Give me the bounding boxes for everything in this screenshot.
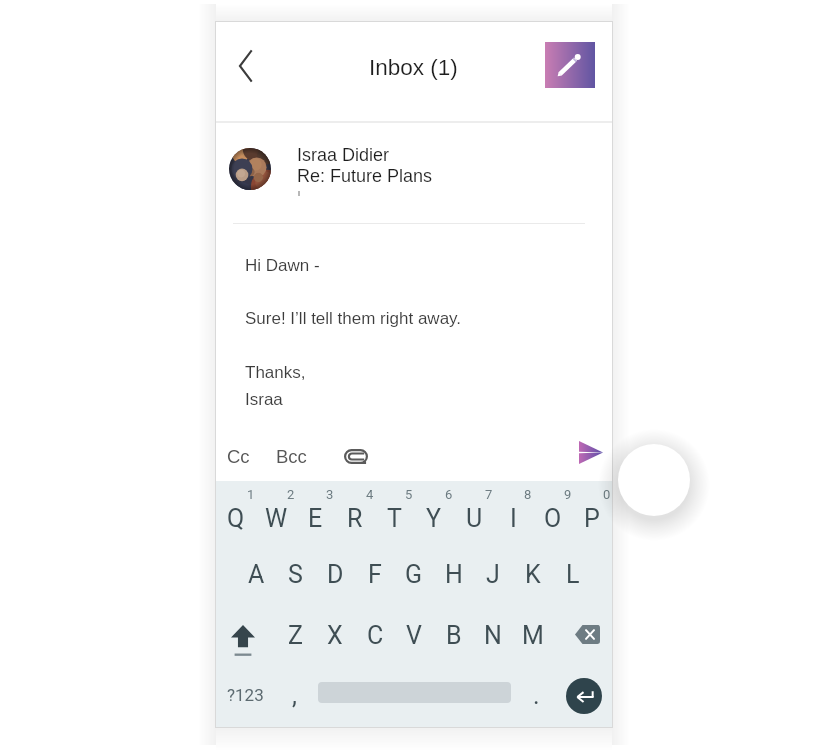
staticText: C [367, 621, 384, 650]
button[interactable]: C [355, 616, 395, 655]
staticText: T [387, 504, 402, 533]
staticText: Sure! I’ll tell them right away. [245, 309, 462, 328]
staticText: 0 [603, 487, 611, 502]
staticText: L [566, 560, 580, 589]
button[interactable]: U [454, 499, 494, 538]
button[interactable]: S [275, 555, 315, 594]
button[interactable]: Attach file [334, 432, 378, 480]
button[interactable]: F [355, 555, 395, 594]
button[interactable]: Y [414, 499, 454, 538]
staticText: Inbox (1) [369, 55, 458, 80]
button[interactable]: E [295, 499, 335, 538]
staticText: X [327, 621, 343, 650]
staticText: N [484, 621, 502, 650]
staticText: K [525, 560, 541, 589]
button[interactable]: G [394, 555, 434, 594]
staticText: W [265, 504, 288, 533]
staticText: Hi Dawn - [245, 256, 320, 275]
staticText: R [347, 504, 363, 533]
button[interactable]: W [256, 499, 296, 538]
button[interactable]: I [493, 499, 533, 538]
staticText: 3 [326, 487, 334, 502]
staticText: O [544, 504, 562, 533]
staticText: Re: Future Plans [297, 166, 433, 186]
button[interactable]: , [274, 680, 318, 722]
staticText: Q [227, 504, 245, 533]
staticText: A [248, 560, 265, 589]
staticText: G [405, 560, 423, 589]
button[interactable]: X [315, 616, 355, 655]
staticText: J [486, 560, 500, 589]
button[interactable]: O [533, 499, 573, 538]
button[interactable]: V [394, 616, 434, 655]
button[interactable]: T [374, 499, 414, 538]
staticText: U [466, 504, 483, 533]
staticText: 7 [485, 487, 493, 502]
staticText: 8 [524, 487, 532, 502]
button[interactable]: Enter [566, 678, 602, 714]
button[interactable]: L [553, 555, 593, 594]
button[interactable]: H [434, 555, 474, 594]
button[interactable]: P [572, 499, 612, 538]
staticText: 9 [564, 487, 572, 502]
button[interactable]: R [335, 499, 375, 538]
staticText: I [510, 504, 517, 533]
staticText: M [522, 621, 544, 650]
staticText: F [368, 560, 382, 589]
staticText: Bcc [276, 446, 307, 467]
staticText: D [327, 560, 344, 589]
staticText: Cc [227, 446, 250, 467]
button[interactable]: M [513, 616, 553, 655]
button[interactable]: Bcc [266, 432, 316, 480]
button[interactable]: Back [222, 42, 270, 90]
staticText: 2 [287, 487, 295, 502]
button[interactable]: Z [275, 616, 315, 655]
staticText: S [288, 560, 303, 589]
button[interactable]: Shift [230, 622, 256, 659]
staticText: Thanks, [245, 363, 306, 382]
staticText: 4 [366, 487, 374, 502]
button[interactable]: . [516, 680, 556, 722]
button[interactable]: B [434, 616, 474, 655]
staticText: Z [288, 621, 303, 650]
staticText: B [446, 621, 462, 650]
staticText: 5 [405, 487, 413, 502]
staticText: H [445, 560, 463, 589]
button[interactable]: Send [571, 428, 611, 476]
button[interactable]: Backspace [567, 615, 607, 654]
button[interactable]: D [315, 555, 355, 594]
staticText: 6 [445, 487, 453, 502]
staticText: 1 [247, 487, 255, 502]
button[interactable]: Cc [218, 432, 258, 480]
staticText: V [406, 621, 422, 650]
staticText: . [533, 681, 540, 710]
button[interactable]: K [513, 555, 553, 594]
button[interactable]: J [473, 555, 513, 594]
staticText: Israa Didier [297, 145, 390, 165]
button[interactable]: ?123 [216, 674, 274, 716]
staticText: Y [426, 504, 442, 533]
staticText: P [584, 504, 600, 533]
staticText: Israa [245, 390, 283, 409]
staticText: , [292, 681, 297, 710]
staticText: ?123 [227, 685, 264, 705]
button[interactable]: Q [216, 499, 256, 538]
button[interactable]: A [236, 555, 276, 594]
button[interactable]: N [473, 616, 513, 655]
staticText: E [308, 504, 323, 533]
button[interactable]: Compose [545, 42, 595, 88]
